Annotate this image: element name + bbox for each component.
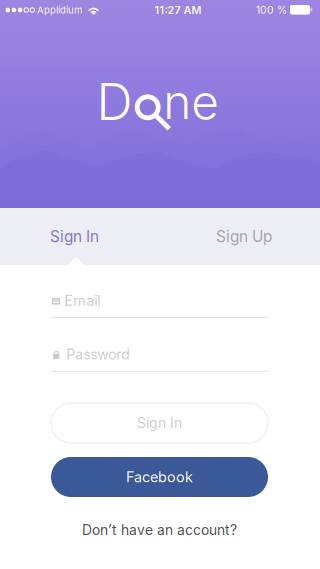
button[interactable]: Sign In <box>0 208 160 265</box>
staticText: D <box>97 71 133 132</box>
button[interactable]: Don’t have an account? <box>51 521 268 539</box>
staticText: Facebook <box>126 468 193 486</box>
staticText: Sign In <box>137 414 182 431</box>
staticText: 11:27 AM <box>154 3 201 17</box>
staticText: 100 % <box>256 4 287 16</box>
button[interactable]: Facebook <box>51 457 268 497</box>
staticText: Sign Up <box>216 227 272 246</box>
staticText: Don’t have an account? <box>82 522 237 538</box>
staticText: Password <box>66 346 130 363</box>
button[interactable]: Sign In <box>51 403 268 443</box>
staticText: Email <box>64 292 100 309</box>
staticText: Applidium <box>37 4 82 16</box>
staticText: ne <box>163 73 219 130</box>
staticText: Sign In <box>50 227 99 246</box>
button[interactable]: Sign Up <box>160 208 320 265</box>
